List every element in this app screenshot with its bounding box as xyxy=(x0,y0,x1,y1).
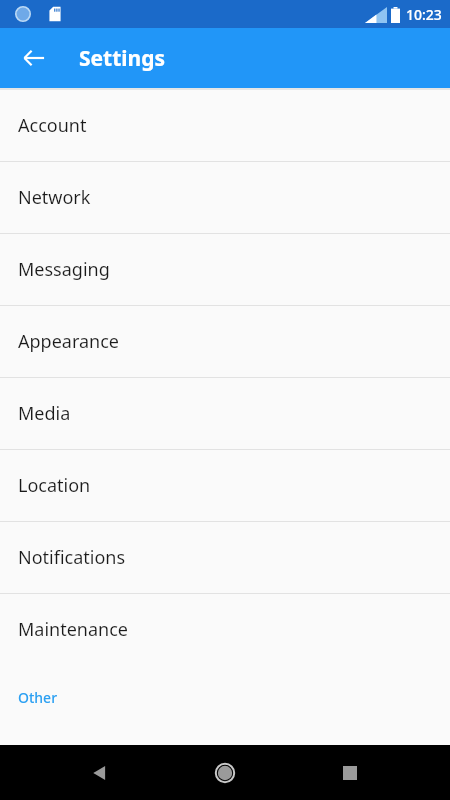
button[interactable]: Back xyxy=(10,34,58,82)
staticText: Account xyxy=(18,113,87,138)
button[interactable]: Help xyxy=(0,729,450,800)
staticText: Media xyxy=(18,401,71,426)
staticText: Settings xyxy=(79,44,166,73)
staticText: Other xyxy=(18,688,58,707)
button[interactable]: Home xyxy=(202,750,248,796)
button[interactable]: Media xyxy=(0,378,450,449)
staticText: Notifications xyxy=(18,545,126,570)
button[interactable]: Recent apps xyxy=(327,750,373,796)
button[interactable]: Location xyxy=(0,450,450,521)
button[interactable]: Appearance xyxy=(0,306,450,377)
staticText: Network xyxy=(18,185,91,210)
staticText: Messaging xyxy=(18,257,110,282)
button[interactable]: Back xyxy=(77,750,123,796)
button[interactable]: Messaging xyxy=(0,234,450,305)
staticText: 10:23 xyxy=(406,5,442,24)
staticText: Appearance xyxy=(18,329,119,354)
staticText: Location xyxy=(18,473,91,498)
button[interactable]: Account xyxy=(0,90,450,161)
button[interactable]: Network xyxy=(0,162,450,233)
staticText: Maintenance xyxy=(18,617,128,642)
button[interactable]: Notifications xyxy=(0,522,450,593)
button[interactable]: Maintenance xyxy=(0,594,450,665)
